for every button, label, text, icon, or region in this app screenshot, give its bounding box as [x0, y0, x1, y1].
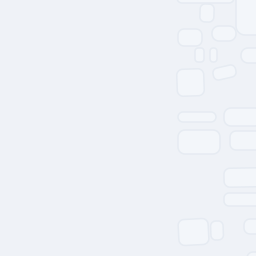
button[interactable]: Tile: [211, 221, 223, 240]
button[interactable]: Tile: [200, 4, 214, 22]
button[interactable]: Tile: [195, 48, 204, 62]
button[interactable]: Tile: [224, 193, 256, 206]
button[interactable]: Tile: [236, 0, 256, 35]
button[interactable]: Tile: [177, 0, 234, 3]
button[interactable]: Tile: [244, 219, 256, 234]
button[interactable]: Tile: [178, 112, 216, 122]
button[interactable]: Tile: [178, 219, 208, 245]
button[interactable]: Tile: [224, 108, 256, 126]
button[interactable]: Tile: [224, 168, 256, 187]
button[interactable]: Tile: [178, 130, 220, 154]
button[interactable]: Tile: [230, 131, 256, 150]
button[interactable]: Tile: [178, 29, 202, 46]
button[interactable]: Tile: [247, 252, 256, 256]
button[interactable]: Tile: [212, 26, 236, 41]
button[interactable]: Tile: [210, 48, 217, 62]
button[interactable]: Tile: [241, 48, 256, 63]
button[interactable]: Tile: [213, 66, 236, 79]
button[interactable]: Tile: [177, 69, 204, 96]
